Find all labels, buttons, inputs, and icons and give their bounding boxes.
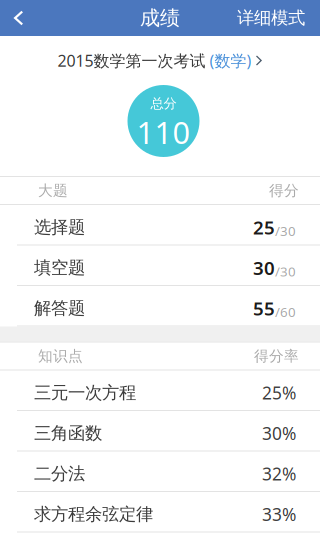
- staticText: 33%: [262, 503, 296, 526]
- button[interactable]: 解答题: [0, 286, 320, 326]
- staticText: 成绩: [140, 6, 180, 30]
- staticText: 填空题: [34, 257, 85, 278]
- staticText: /60: [275, 303, 296, 321]
- staticText: 25: [253, 215, 275, 240]
- staticText: 得分率: [254, 347, 299, 365]
- button[interactable]: 三角函数: [0, 411, 320, 451]
- staticText: 得分: [269, 181, 299, 199]
- button[interactable]: Back: [0, 0, 35, 36]
- button[interactable]: 求方程余弦定律: [0, 492, 320, 532]
- staticText: (数学): [209, 50, 251, 71]
- staticText: 30: [253, 255, 275, 280]
- staticText: 三角函数: [34, 423, 102, 444]
- staticText: 详细模式: [237, 7, 305, 29]
- staticText: 解答题: [34, 298, 85, 319]
- staticText: 55: [253, 296, 275, 321]
- staticText: 知识点: [38, 347, 83, 365]
- button[interactable]: 三元一次方程: [0, 370, 320, 411]
- button[interactable]: 二分法: [0, 451, 320, 492]
- button[interactable]: 详细模式: [222, 0, 320, 36]
- staticText: /30: [275, 262, 296, 280]
- staticText: 大题: [38, 181, 68, 199]
- staticText: 二分法: [34, 463, 85, 484]
- staticText: /30: [275, 222, 296, 240]
- staticText: 30%: [262, 422, 296, 445]
- button[interactable]: 填空题: [0, 245, 320, 286]
- staticText: 110: [136, 112, 190, 152]
- staticText: 选择题: [34, 217, 85, 238]
- staticText: 总分: [150, 95, 176, 112]
- staticText: 2015数学第一次考试: [57, 50, 205, 71]
- button[interactable]: 2015数学第一次考试: [57, 46, 262, 74]
- button[interactable]: 选择题: [0, 205, 320, 245]
- staticText: 25%: [262, 381, 296, 404]
- staticText: 求方程余弦定律: [34, 504, 153, 525]
- staticText: 三元一次方程: [34, 382, 136, 403]
- staticText: 32%: [262, 462, 296, 485]
